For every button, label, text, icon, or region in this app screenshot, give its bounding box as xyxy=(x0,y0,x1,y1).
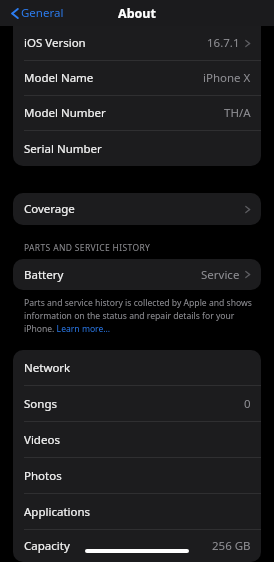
staticText: Model Name xyxy=(24,70,94,86)
button[interactable]: Songs xyxy=(13,386,261,421)
staticText: Network xyxy=(24,360,71,376)
staticText: Photos xyxy=(24,468,62,484)
button[interactable]: Serial Number xyxy=(13,131,261,166)
staticText: Applications xyxy=(24,504,91,520)
button[interactable]: Videos xyxy=(13,422,261,457)
staticText: 0 xyxy=(244,396,251,412)
button[interactable]: Photos xyxy=(13,458,261,493)
staticText: Parts and service history is collected b… xyxy=(24,297,257,335)
button[interactable]: Model Name xyxy=(13,61,261,95)
button[interactable]: Coverage xyxy=(13,193,261,225)
button[interactable]: Capacity xyxy=(13,530,261,562)
button[interactable]: Model Number xyxy=(13,96,261,130)
staticText: PARTS AND SERVICE HISTORY xyxy=(24,242,151,254)
button[interactable]: Network xyxy=(13,350,261,385)
button[interactable]: Back to General xyxy=(0,2,72,24)
staticText: Coverage xyxy=(24,201,75,217)
staticText: iPhone X xyxy=(203,70,251,86)
button[interactable]: Battery xyxy=(13,259,261,290)
staticText: Model Number xyxy=(24,105,106,121)
staticText: Battery xyxy=(24,267,64,283)
staticText: Capacity xyxy=(24,538,70,554)
button[interactable]: Applications xyxy=(13,494,261,529)
staticText: Serial Number xyxy=(24,141,102,157)
staticText: About xyxy=(118,5,156,22)
button[interactable]: iOS Version xyxy=(13,26,261,60)
staticText: TH/A xyxy=(224,105,251,121)
staticText: General xyxy=(21,5,64,21)
staticText: 256 GB xyxy=(212,538,251,554)
staticText: Songs xyxy=(24,396,57,412)
staticText: Service xyxy=(201,267,240,283)
staticText: 16.7.1 xyxy=(207,35,240,51)
staticText: Videos xyxy=(24,432,60,448)
staticText: iOS Version xyxy=(24,35,86,51)
